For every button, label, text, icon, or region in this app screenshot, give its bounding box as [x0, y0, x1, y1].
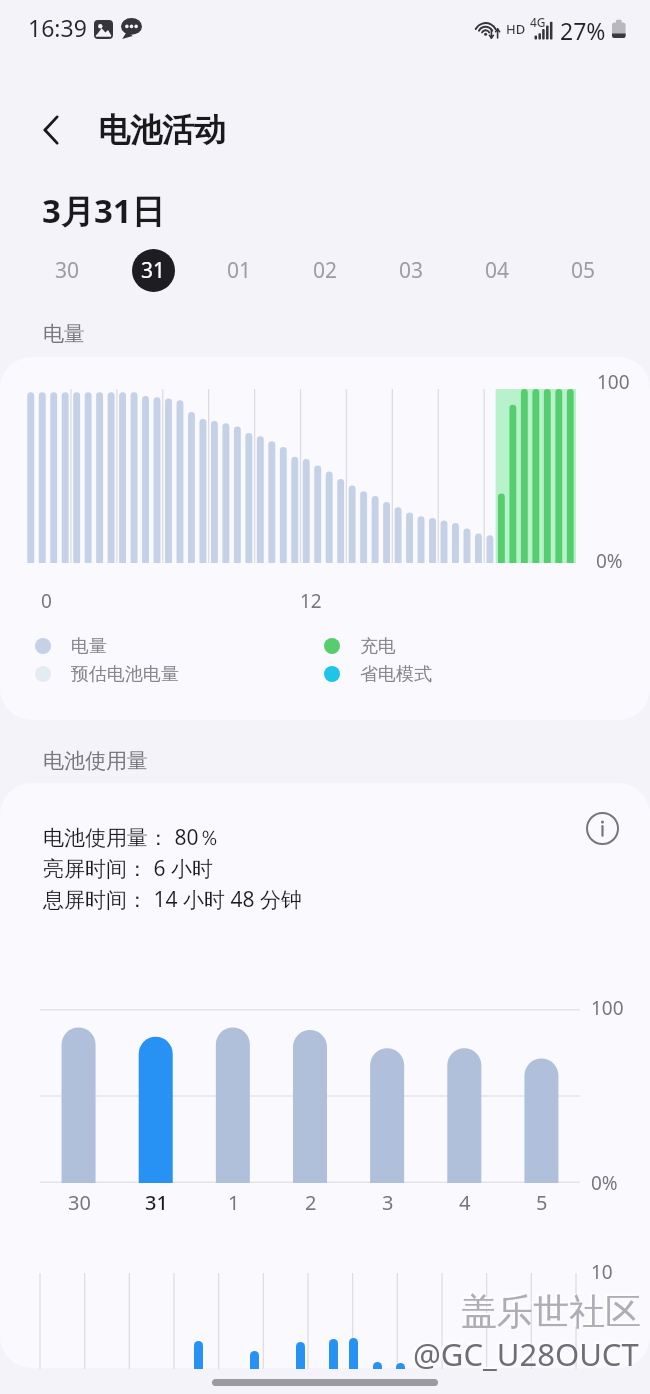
staticText: 03 — [399, 256, 424, 285]
staticText: 电池使用量： 80％ — [43, 823, 220, 852]
staticText: 电量 — [43, 321, 85, 347]
staticText: HD — [506, 20, 526, 38]
staticText: 电池使用量 — [43, 748, 148, 774]
staticText: 充电 — [360, 635, 396, 658]
staticText: 04 — [485, 256, 510, 285]
staticText: 0 — [41, 588, 52, 614]
staticText: 10 — [591, 1259, 613, 1285]
staticText: 盖乐世社区 — [459, 1287, 639, 1332]
button[interactable]: 01 — [196, 240, 282, 300]
staticText: 05 — [571, 256, 596, 285]
staticText: 01 — [227, 256, 252, 285]
staticText: 电池活动 — [98, 110, 226, 150]
staticText: 电量 — [71, 635, 107, 658]
staticText: 2 — [305, 1189, 317, 1216]
button[interactable]: 03 — [368, 240, 454, 300]
staticText: 省电模式 — [360, 663, 432, 686]
staticText: @GC_U28OUCT — [411, 1331, 637, 1373]
staticText: 16:39 — [28, 12, 87, 43]
button[interactable]: Back — [29, 107, 75, 153]
staticText: 30 — [55, 256, 80, 285]
button[interactable]: 30 — [24, 240, 110, 300]
staticText: 100 — [591, 995, 624, 1021]
staticText: 4 — [459, 1189, 471, 1216]
staticText: 31 — [141, 256, 166, 285]
staticText: 盖乐世社区 — [461, 1289, 641, 1334]
staticText: 100 — [597, 369, 630, 395]
staticText: 3 — [382, 1189, 394, 1216]
staticText: 12 — [300, 588, 322, 614]
staticText: 4G — [530, 14, 546, 30]
staticText: 亮屏时间： 6 小时 — [43, 854, 213, 883]
button[interactable]: 02 — [282, 240, 368, 300]
button[interactable]: Info — [582, 808, 622, 848]
staticText: 预估电池电量 — [71, 663, 179, 686]
staticText: 30 — [68, 1189, 91, 1216]
staticText: 0% — [591, 1170, 618, 1196]
staticText: 1 — [228, 1189, 240, 1216]
staticText: 0% — [596, 548, 623, 574]
staticText: 02 — [313, 256, 338, 285]
button[interactable]: 05 — [540, 240, 626, 300]
button[interactable]: 04 — [454, 240, 540, 300]
staticText: 31 — [145, 1189, 168, 1216]
staticText: 3月31日 — [42, 188, 165, 233]
staticText: 27% — [560, 15, 606, 46]
staticText: @GC_U28OUCT — [413, 1333, 639, 1375]
staticText: 5 — [536, 1189, 548, 1216]
button[interactable]: 31 — [110, 240, 196, 300]
staticText: 息屏时间： 14 小时 48 分钟 — [43, 885, 302, 914]
